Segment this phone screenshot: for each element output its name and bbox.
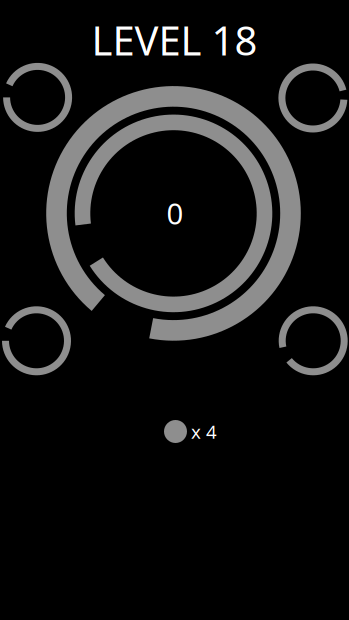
staticText: LEVEL 18 (91, 13, 257, 66)
button[interactable]: Tap to spin (32, 72, 315, 355)
staticText: 0 (166, 193, 183, 232)
staticText: x 4 (191, 419, 217, 444)
